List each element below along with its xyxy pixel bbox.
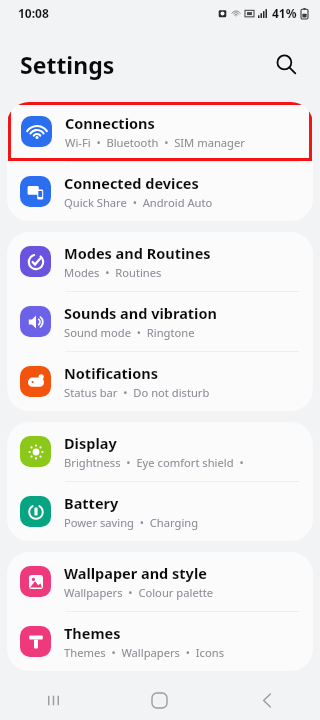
staticText: Connected devices — [64, 173, 199, 193]
staticText: Brightness • Eye comfort shield • Naviga… — [64, 455, 299, 470]
button[interactable]: Home — [106, 680, 213, 720]
staticText: Themes • Wallpapers • Icons — [64, 645, 225, 660]
button[interactable]: Search — [264, 42, 308, 86]
staticText: 10:08 — [18, 5, 49, 21]
staticText: Quick Share • Android Auto — [64, 195, 213, 210]
staticText: Settings — [20, 49, 115, 80]
staticText: Display — [64, 433, 117, 453]
staticText: Sound mode • Ringtone — [64, 325, 195, 340]
staticText: Connections — [65, 113, 155, 133]
staticText: Modes and Routines — [64, 243, 211, 263]
button[interactable]: Battery — [7, 482, 313, 541]
staticText: Notifications — [64, 363, 158, 383]
staticText: Status bar • Do not disturb — [64, 385, 210, 400]
staticText: Themes — [64, 623, 121, 643]
staticText: Wallpaper and style — [64, 563, 207, 583]
button[interactable]: Notifications — [7, 352, 313, 411]
staticText: 41% — [272, 5, 297, 21]
staticText: Battery — [64, 493, 119, 513]
staticText: Wi-Fi • Bluetooth • SIM manager — [65, 135, 245, 150]
staticText: Power saving • Charging — [64, 515, 199, 530]
button[interactable]: Themes — [7, 612, 313, 671]
button[interactable]: Recents — [0, 680, 106, 720]
button[interactable]: Display — [7, 422, 313, 481]
button[interactable]: Connected devices — [7, 162, 313, 221]
staticText: Wallpapers • Colour palette — [64, 585, 214, 600]
button[interactable]: Sounds and vibration — [7, 292, 313, 351]
button[interactable]: Connections — [8, 102, 312, 161]
staticText: Modes • Routines — [64, 265, 162, 280]
staticText: Sounds and vibration — [64, 303, 217, 323]
button[interactable]: Wallpaper and style — [7, 552, 313, 611]
button[interactable]: Back — [213, 680, 320, 720]
button[interactable]: Modes and Routines — [7, 232, 313, 291]
